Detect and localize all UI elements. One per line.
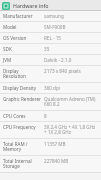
- staticText: 11357 MB: [44, 141, 98, 147]
- button[interactable]: CPU Frequency: [0, 122, 101, 139]
- button[interactable]: Display Density: [0, 83, 101, 94]
- staticText: JVM: [3, 57, 42, 63]
- staticText: Total RAM / Memory: [3, 141, 42, 153]
- staticText: Display Resolution: [3, 68, 42, 80]
- staticText: OS Version: [3, 35, 42, 41]
- staticText: Manufacturer: [3, 13, 42, 19]
- staticText: Model: [3, 24, 42, 30]
- button[interactable]: CPU Cores: [0, 111, 101, 122]
- staticText: REL - 15: [44, 35, 98, 41]
- button[interactable]: Total Internal Storage: [0, 156, 101, 173]
- staticText: 8: [44, 113, 98, 119]
- staticText: Display Density: [3, 85, 42, 91]
- staticText: Dalvik - 2.1.0: [44, 57, 98, 63]
- staticText: SM-F900B: [44, 24, 98, 30]
- staticText: 3X 2,4 GHz + 4X 1,8 GHz + 1X 2,8 GHz: [44, 124, 98, 136]
- staticText: Graphic Renderer: [3, 96, 42, 102]
- button[interactable]: Graphic Renderer: [0, 94, 101, 111]
- button[interactable]: Manufacturer: [0, 11, 101, 22]
- staticText: 2173 x 840 pixels: [44, 68, 98, 74]
- staticText: Hardware info: [13, 2, 49, 9]
- staticText: 360 dpi: [44, 85, 98, 91]
- staticText: CPU Cores: [3, 113, 42, 119]
- button[interactable]: Display Resolution: [0, 66, 101, 83]
- staticText: SDK: [3, 46, 42, 52]
- button[interactable]: SDK: [0, 44, 101, 55]
- staticText: Qualcomm Adreno (TM) 660 8.2: [44, 96, 98, 108]
- button[interactable]: Total RAM / Memory: [0, 139, 101, 156]
- staticText: 227840 MB: [44, 158, 98, 164]
- staticText: CPU Frequency: [3, 124, 42, 130]
- staticText: Total Internal Storage: [3, 158, 42, 170]
- staticText: 35: [44, 46, 98, 52]
- button[interactable]: OS Version: [0, 33, 101, 44]
- button[interactable]: JVM: [0, 55, 101, 66]
- other: Hardware info app icon: [2, 2, 10, 10]
- staticText: samsung: [44, 13, 98, 19]
- button[interactable]: Model: [0, 22, 101, 33]
